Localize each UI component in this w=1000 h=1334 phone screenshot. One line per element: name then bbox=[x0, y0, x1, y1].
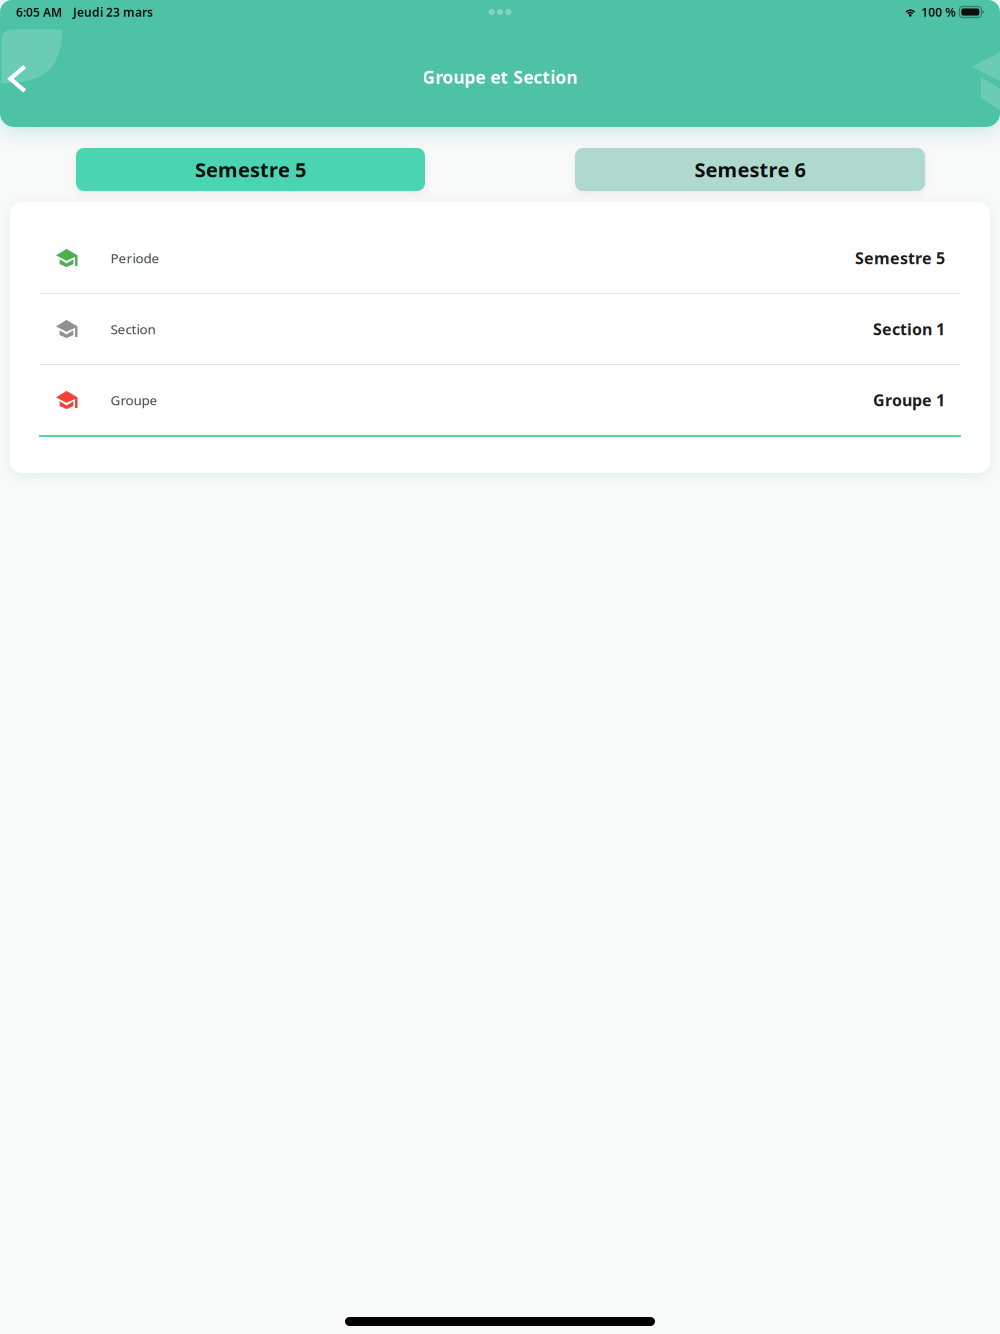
staticText: 100 % bbox=[921, 4, 956, 20]
button[interactable]: Groupe bbox=[10, 365, 990, 435]
staticText: Semestre 6 bbox=[694, 156, 805, 183]
staticText: Groupe et Section bbox=[422, 65, 577, 88]
staticText: Periode bbox=[110, 249, 159, 267]
button[interactable]: Semestre 6 bbox=[575, 148, 925, 191]
staticText: Groupe bbox=[110, 391, 157, 409]
button[interactable]: Periode bbox=[10, 223, 990, 293]
button[interactable]: Back bbox=[0, 44, 33, 107]
staticText: Section 1 bbox=[873, 318, 945, 340]
button[interactable]: Semestre 5 bbox=[76, 148, 425, 191]
staticText: Section bbox=[110, 320, 155, 338]
staticText: Semestre 5 bbox=[855, 247, 945, 269]
staticText: 6:05 AM bbox=[16, 4, 62, 20]
staticText: Groupe 1 bbox=[873, 389, 945, 411]
button[interactable]: Section bbox=[10, 294, 990, 364]
staticText: Jeudi 23 mars bbox=[73, 4, 153, 20]
staticText: Semestre 5 bbox=[195, 156, 306, 183]
